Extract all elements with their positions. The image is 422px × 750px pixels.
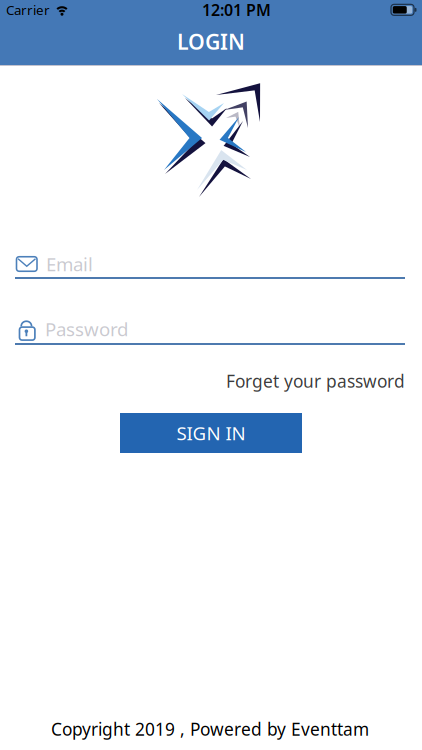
button[interactable]: SIGN IN — [120, 413, 302, 453]
button[interactable]: Password — [0, 320, 422, 346]
staticText: 12:01 PM — [202, 0, 271, 20]
staticText: Email — [46, 252, 93, 276]
staticText: Copyright 2019 , Powered by Eventtam — [51, 717, 369, 740]
staticText: Forget your password — [226, 369, 405, 392]
staticText: Password — [45, 317, 128, 341]
staticText: SIGN IN — [176, 421, 245, 445]
button[interactable]: Forget your password — [0, 369, 422, 393]
button[interactable]: Email — [0, 256, 422, 280]
staticText: LOGIN — [177, 27, 245, 56]
staticText: Carrier — [6, 1, 50, 19]
